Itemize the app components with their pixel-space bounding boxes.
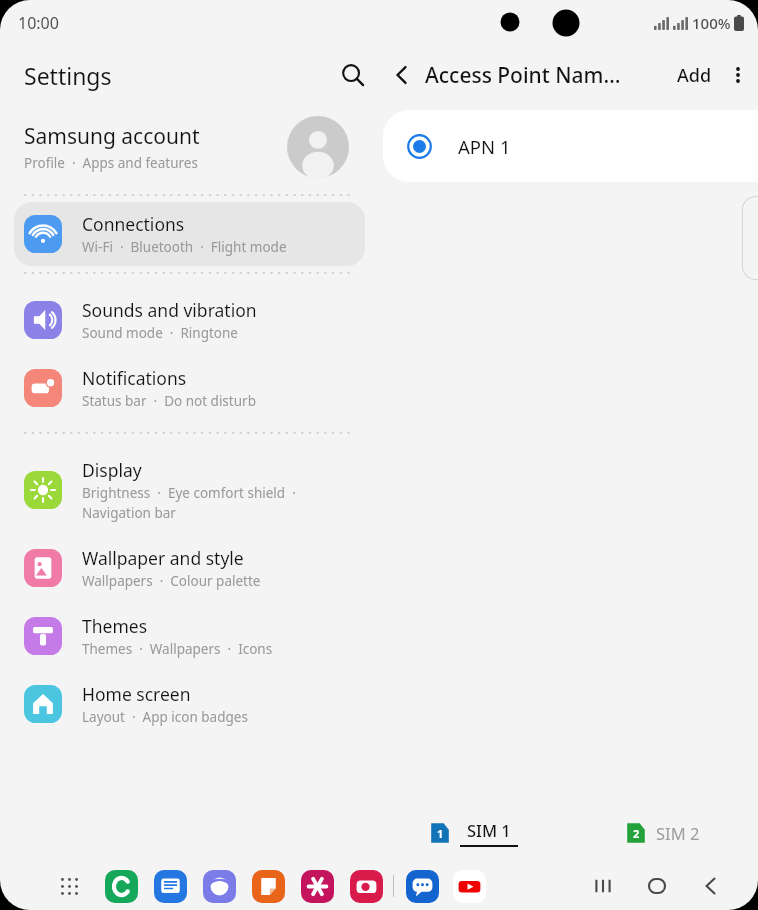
staticText: Layout · App icon badges [82,708,248,726]
staticText: Access Point Nam… [425,61,621,90]
staticText: Brightness · Eye comfort shield · Naviga… [82,484,355,522]
button[interactable]: Themes [14,604,365,668]
button[interactable]: Home [640,869,674,903]
button[interactable]: APN 1 [383,110,758,182]
staticText: SIM 2 [656,822,700,844]
button[interactable]: Chat [405,869,439,903]
button[interactable]: Sounds and vibration [14,288,365,352]
button[interactable]: Camera [349,869,383,903]
button[interactable]: Apps [52,869,86,903]
staticText: 2 [633,826,640,841]
button[interactable]: Back [379,52,425,98]
button[interactable]: 1 [379,804,568,862]
button[interactable]: Wallpaper and style [14,536,365,600]
staticText: 10:00 [18,12,59,34]
button[interactable]: Home screen [14,672,365,736]
button[interactable]: Phone [104,869,138,903]
staticText: 1 [437,826,444,841]
button[interactable]: Samsung account [0,104,379,190]
staticText: Display [82,458,142,482]
staticText: Home screen [82,682,191,706]
staticText: Wi-Fi · Bluetooth · Flight mode [82,238,287,256]
staticText: Sound mode · Ringtone [82,324,238,342]
button[interactable]: More options [718,55,758,95]
button[interactable]: recents [586,869,620,903]
staticText: APN 1 [458,134,511,159]
staticText: Settings [24,60,327,91]
button[interactable]: Messages [153,869,187,903]
staticText: Add [677,63,712,88]
button[interactable]: Internet [202,869,236,903]
staticText: 100% [692,13,731,33]
staticText: Sounds and vibration [82,298,257,322]
staticText: Samsung account [24,122,200,151]
staticText: Wallpapers · Colour palette [82,572,261,590]
staticText: Wallpaper and style [82,546,244,570]
button[interactable]: Back [694,869,728,903]
button[interactable]: Notes [251,869,285,903]
button[interactable]: Search [327,49,379,101]
staticText: Themes [82,614,148,638]
button[interactable]: Connections [14,202,365,266]
button[interactable]: Add [671,55,718,96]
button[interactable]: Gallery [300,869,334,903]
staticText: SIM 1 [467,819,511,841]
button[interactable]: Notifications [14,356,365,420]
button[interactable]: Display [14,448,365,532]
staticText: Themes · Wallpapers · Icons [82,640,273,658]
staticText: Connections [82,212,185,236]
button[interactable]: 2 [568,804,758,862]
staticText: Profile · Apps and features [24,154,198,172]
staticText: Status bar · Do not disturb [82,392,256,410]
staticText: Notifications [82,366,187,390]
button[interactable]: YouTube [452,869,486,903]
